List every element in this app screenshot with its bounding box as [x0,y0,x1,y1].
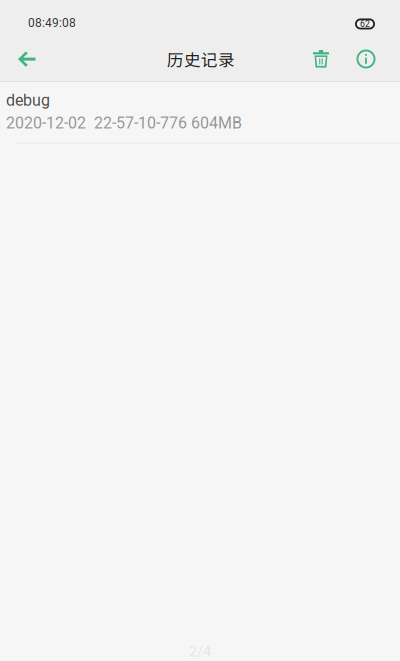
staticText: 历史记录 [167,47,235,71]
staticText: 62 [360,19,370,29]
staticText: debug [6,91,50,110]
button[interactable]: Delete history [298,39,344,79]
button[interactable]: Back [0,39,54,79]
staticText: 2020-12-02 22-57-10-776 604MB [6,114,242,133]
staticText: 08:49:08 [28,16,76,30]
staticText: 2/4 [189,643,211,660]
button[interactable]: Information [344,39,388,79]
button[interactable]: debug [0,82,400,142]
